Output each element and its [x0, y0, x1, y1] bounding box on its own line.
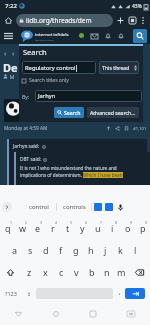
- button[interactable]: Clipboard: [105, 203, 113, 211]
- button[interactable]: 7: [90, 218, 105, 238]
- staticText: Jarhyn: [38, 92, 56, 100]
- staticText: It is not I who misunderstand the nature…: [20, 165, 117, 171]
- button[interactable]: Comma: [22, 286, 36, 301]
- staticText: Search: [23, 47, 47, 57]
- button[interactable]: c: [53, 262, 69, 282]
- button[interactable]: Period: [113, 286, 125, 301]
- staticText: m: [117, 266, 126, 278]
- staticText: s: [28, 244, 33, 256]
- button[interactable]: g: [68, 240, 83, 260]
- staticText: iidb.org/threads/dem: [26, 16, 92, 25]
- staticText: z: [27, 266, 32, 278]
- button[interactable]: control: [22, 198, 56, 216]
- button[interactable]: controls: [57, 198, 91, 216]
- staticText: #1,101: [133, 126, 147, 132]
- staticText: w: [19, 222, 27, 234]
- staticText: controls: [63, 203, 86, 211]
- button[interactable]: Search titles only: [22, 77, 69, 84]
- button[interactable]: Menu: [2, 28, 15, 44]
- staticText: 2: [25, 220, 28, 225]
- staticText: v: [74, 266, 79, 278]
- staticText: i: [111, 222, 114, 234]
- button[interactable]: s: [23, 240, 38, 260]
- button[interactable]: 9: [120, 218, 135, 238]
- staticText: 5: [70, 220, 73, 225]
- button[interactable]: d: [38, 240, 53, 260]
- button[interactable]: Tabs: [126, 14, 138, 26]
- button[interactable]: n: [99, 262, 114, 282]
- button[interactable]: internet infidels: [21, 28, 69, 44]
- button[interactable]: More options: [138, 15, 148, 25]
- staticText: y: [80, 222, 85, 234]
- staticText: x: [43, 266, 48, 278]
- staticText: Which I have been: [83, 172, 123, 178]
- staticText: DBT said:: [20, 156, 41, 163]
- button[interactable]: Alerts: [103, 28, 113, 44]
- staticText: Search titles only: [29, 77, 69, 84]
- staticText: n: [104, 266, 110, 278]
- button[interactable]: j: [98, 240, 113, 260]
- button[interactable]: h: [83, 240, 98, 260]
- button[interactable]: Home: [2, 14, 15, 27]
- button[interactable]: 3: [30, 218, 45, 238]
- button[interactable]: Shift: [0, 262, 21, 282]
- button[interactable]: m: [114, 262, 129, 282]
- button[interactable]: Home: [37, 302, 74, 325]
- button[interactable]: Jarhyn: [35, 90, 142, 102]
- button[interactable]: Regulatory control: [22, 61, 96, 74]
- staticText: De: [3, 60, 18, 75]
- button[interactable]: 2: [15, 218, 30, 238]
- button[interactable]: 5: [60, 218, 75, 238]
- staticText: c: [59, 266, 64, 278]
- button[interactable]: 4: [45, 218, 60, 238]
- button[interactable]: Search: [54, 107, 84, 118]
- button[interactable]: b: [84, 262, 99, 282]
- button[interactable]: f: [53, 240, 68, 260]
- button[interactable]: New tab: [114, 14, 126, 26]
- button[interactable]: 8: [105, 218, 120, 238]
- button[interactable]: This thread: [99, 61, 139, 74]
- staticText: f: [59, 244, 63, 256]
- staticText: p: [140, 222, 146, 234]
- button[interactable]: k: [113, 240, 128, 260]
- button[interactable]: Search: [133, 29, 147, 43]
- button[interactable]: Backspace: [129, 262, 150, 282]
- staticText: r: [51, 222, 55, 234]
- staticText: implications of determinism.: [20, 172, 83, 178]
- staticText: j: [104, 244, 107, 256]
- staticText: t: [66, 222, 70, 234]
- button[interactable]: Bookmarks: [116, 28, 126, 44]
- staticText: ‹: [12, 49, 15, 59]
- button[interactable]: 6: [75, 218, 90, 238]
- button[interactable]: 0: [135, 218, 150, 238]
- button[interactable]: 1: [0, 218, 15, 238]
- button[interactable]: x: [37, 262, 53, 282]
- button[interactable]: l: [128, 240, 143, 260]
- button[interactable]: ?123: [0, 286, 22, 301]
- staticText: discussion board: [35, 38, 54, 41]
- staticText: 43%: [132, 3, 142, 10]
- staticText: l: [134, 244, 137, 256]
- button[interactable]: Switch keyboard: [112, 302, 150, 325]
- button[interactable]: Enter: [125, 288, 145, 299]
- button[interactable]: z: [21, 262, 37, 282]
- button[interactable]: a: [7, 240, 23, 260]
- button[interactable]: Translate: [94, 203, 102, 211]
- button[interactable]: Inbox: [89, 28, 99, 44]
- button[interactable]: iidb.org/threads/dem: [16, 14, 113, 27]
- button[interactable]: Recent apps: [74, 302, 112, 325]
- staticText: 7: [100, 220, 103, 225]
- button[interactable]: Voice input: [116, 203, 125, 212]
- button[interactable]: Expand suggestions: [2, 202, 12, 212]
- staticText: o: [125, 222, 131, 234]
- staticText: h: [88, 244, 94, 256]
- staticText: 1: [10, 220, 13, 225]
- staticText: ‹: [4, 49, 7, 59]
- button[interactable]: Back: [0, 302, 37, 325]
- staticText: By:: [22, 93, 30, 100]
- button[interactable]: Advanced search...: [87, 107, 139, 118]
- staticText: Advanced search...: [90, 109, 136, 116]
- button[interactable]: v: [69, 262, 84, 282]
- staticText: a: [12, 244, 18, 256]
